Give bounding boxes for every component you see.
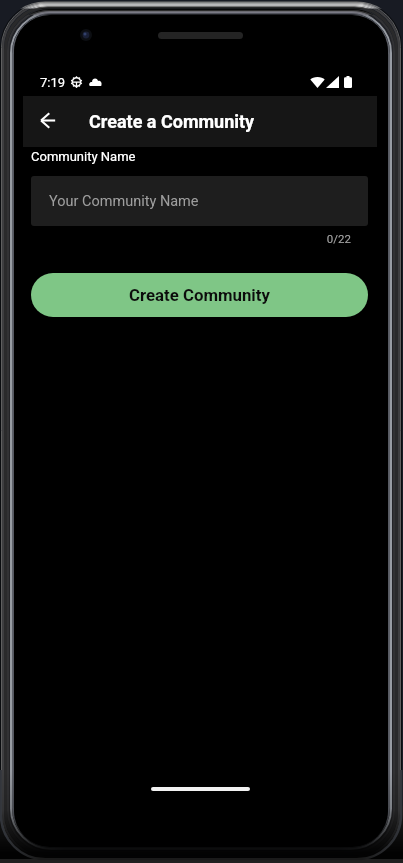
button[interactable]: Back xyxy=(24,96,72,144)
staticText: 0/22 xyxy=(23,232,351,245)
staticText: 7:19 xyxy=(40,75,66,90)
button[interactable]: Your Community Name xyxy=(31,176,368,226)
staticText: Your Community Name xyxy=(49,193,199,210)
staticText: Create Community xyxy=(129,285,270,305)
staticText: Community Name xyxy=(31,149,136,164)
button[interactable]: Create Community xyxy=(31,273,368,317)
staticText: Create a Community xyxy=(89,111,255,132)
